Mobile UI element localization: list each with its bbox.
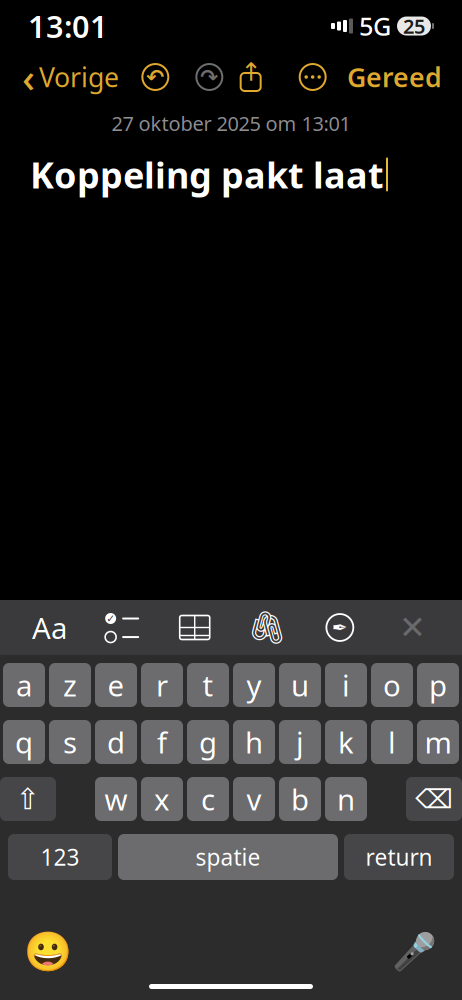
staticText: Koppeling pakt laat xyxy=(30,151,384,198)
staticText: e xyxy=(107,665,124,704)
staticText: 🎤 xyxy=(391,931,436,972)
staticText: z xyxy=(63,665,77,704)
staticText: ↑ xyxy=(240,58,261,86)
staticText: v xyxy=(246,779,261,818)
staticText: j xyxy=(296,722,304,761)
staticText: ✒ xyxy=(332,617,348,638)
staticText: 😀 xyxy=(24,930,72,974)
button[interactable]: Close keyboard xyxy=(389,602,435,652)
staticText: y xyxy=(246,665,261,704)
button[interactable]: v xyxy=(233,777,275,821)
staticText: g xyxy=(199,722,217,761)
staticText: Aa xyxy=(32,608,67,647)
staticText: ⌫ xyxy=(415,784,453,814)
button[interactable]: o xyxy=(371,663,413,707)
button[interactable]: Attach xyxy=(244,602,290,652)
button[interactable]: x xyxy=(141,777,183,821)
button[interactable]: m xyxy=(417,720,459,764)
button[interactable]: n xyxy=(325,777,367,821)
staticText: k xyxy=(338,722,354,761)
button[interactable]: w xyxy=(95,777,137,821)
button[interactable]: a xyxy=(3,663,45,707)
staticText: p xyxy=(429,665,447,704)
button[interactable]: r xyxy=(141,663,183,707)
button[interactable]: k xyxy=(325,720,367,764)
button[interactable]: return xyxy=(344,834,454,880)
button[interactable]: l xyxy=(371,720,413,764)
button[interactable]: z xyxy=(49,663,91,707)
button[interactable]: p xyxy=(417,663,459,707)
staticText: Gereed xyxy=(347,59,442,95)
button[interactable]: i xyxy=(325,663,367,707)
staticText: return xyxy=(365,842,432,872)
staticText: w xyxy=(104,779,127,818)
button[interactable]: u xyxy=(279,663,321,707)
staticText: b xyxy=(291,779,309,818)
button[interactable]: y xyxy=(233,663,275,707)
staticText: m xyxy=(424,722,451,761)
staticText: c xyxy=(201,779,215,818)
staticText: h xyxy=(245,722,263,761)
staticText: u xyxy=(291,665,309,704)
staticText: t xyxy=(202,665,213,704)
staticText: 13:01 xyxy=(28,6,108,46)
staticText: ‹ xyxy=(22,50,35,103)
staticText: a xyxy=(16,665,32,704)
staticText: l xyxy=(388,722,396,761)
button[interactable]: Shift xyxy=(0,777,56,821)
staticText: 5G xyxy=(359,9,391,43)
staticText: o xyxy=(383,665,401,704)
staticText: d xyxy=(107,722,125,761)
staticText: 123 xyxy=(40,842,79,872)
staticText: 27 oktober 2025 om 13:01 xyxy=(111,110,350,137)
staticText: ⇧ xyxy=(15,782,40,816)
button[interactable]: b xyxy=(279,777,321,821)
button[interactable]: d xyxy=(95,720,137,764)
button[interactable]: Checklist xyxy=(99,602,145,652)
staticText: ✓ xyxy=(106,612,115,624)
button[interactable]: 123 xyxy=(8,834,112,880)
staticText: 25 xyxy=(403,13,425,39)
staticText: r xyxy=(156,665,168,704)
staticText: Vorige xyxy=(39,59,119,95)
staticText: f xyxy=(157,722,167,761)
button[interactable]: Markup xyxy=(317,602,363,652)
staticText: ✕ xyxy=(399,609,426,646)
staticText: x xyxy=(154,779,170,818)
button[interactable]: Table xyxy=(172,602,218,652)
button[interactable]: Delete xyxy=(406,777,462,821)
button[interactable]: Text format xyxy=(27,602,73,652)
button[interactable]: e xyxy=(95,663,137,707)
staticText: spatie xyxy=(195,842,260,872)
staticText: q xyxy=(15,722,33,761)
staticText: n xyxy=(337,779,355,818)
button[interactable]: Undo xyxy=(140,55,170,99)
staticText: s xyxy=(63,722,77,761)
staticText: ↷ xyxy=(200,65,218,89)
staticText: 🖇 xyxy=(247,609,288,646)
button[interactable]: h xyxy=(233,720,275,764)
button[interactable]: ‹ xyxy=(12,55,129,99)
button[interactable]: Dictation xyxy=(392,930,436,974)
button[interactable]: More xyxy=(298,55,328,99)
button[interactable]: g xyxy=(187,720,229,764)
staticText: ↶ xyxy=(146,65,164,89)
button[interactable]: f xyxy=(141,720,183,764)
button[interactable]: spatie xyxy=(118,834,338,880)
button[interactable]: Gereed xyxy=(339,55,450,99)
button[interactable]: t xyxy=(187,663,229,707)
staticText: i xyxy=(342,665,350,704)
button[interactable]: c xyxy=(187,777,229,821)
button[interactable]: Share xyxy=(236,55,266,99)
button[interactable]: Emoji xyxy=(26,930,70,974)
button[interactable]: s xyxy=(49,720,91,764)
button[interactable]: q xyxy=(3,720,45,764)
button[interactable]: j xyxy=(279,720,321,764)
button[interactable]: Redo xyxy=(194,55,224,99)
